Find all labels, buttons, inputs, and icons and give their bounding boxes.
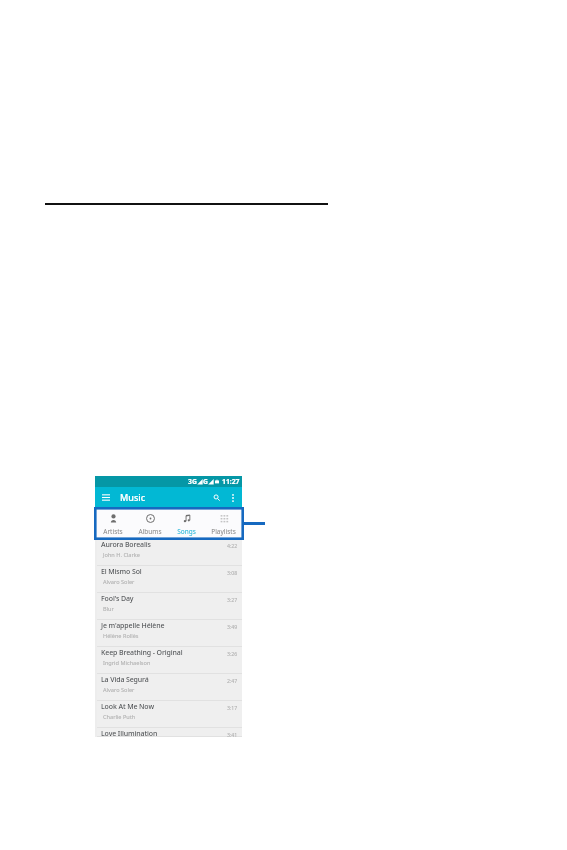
staticText: G [203, 477, 208, 486]
staticText: Songs [177, 527, 196, 536]
staticText: 3G [188, 477, 197, 486]
staticText: 11:27 [222, 477, 240, 486]
staticText: Alvaro Soler [103, 686, 135, 694]
staticText: 3:27 [227, 596, 238, 603]
staticText: Albums [138, 527, 162, 536]
staticText: 3:08 [227, 569, 238, 576]
staticText: 3:41 [227, 731, 238, 737]
staticText: Love Illumination [101, 729, 158, 737]
button[interactable]: Artists [95, 507, 131, 539]
staticText: 2:47 [227, 677, 238, 684]
staticText: 4:22 [227, 542, 238, 549]
button[interactable]: El Mismo Sol [95, 566, 242, 593]
button[interactable]: Keep Breathing - Original [95, 647, 242, 674]
staticText: John H. Clarke [103, 551, 140, 559]
button[interactable]: Aurora Borealis [95, 539, 242, 566]
button[interactable]: More options [226, 491, 239, 504]
staticText: Keep Breathing - Original [101, 648, 183, 658]
staticText: Je m'appelle Hélène [101, 621, 165, 631]
staticText: Ingrid Michaelson [103, 659, 151, 667]
staticText: La Vida Segurá [101, 675, 149, 685]
button[interactable]: La Vida Segurá [95, 674, 242, 701]
staticText: Music [120, 491, 146, 503]
staticText: Look At Me Now [101, 702, 154, 712]
staticText: Charlie Puth [103, 713, 136, 721]
staticText: Artists [103, 527, 123, 536]
staticText: 3:49 [227, 623, 238, 630]
button[interactable]: Je m'appelle Hélène [95, 620, 242, 647]
button[interactable]: Playlists [205, 507, 242, 539]
button[interactable]: Fool's Day [95, 593, 242, 620]
staticText: El Mismo Sol [101, 567, 142, 577]
staticText: Alvaro Soler [103, 578, 135, 586]
staticText: Aurora Borealis [101, 540, 151, 550]
button[interactable]: Search [210, 491, 223, 504]
button[interactable]: Songs [168, 507, 205, 539]
staticText: 3:17 [227, 704, 238, 711]
button[interactable]: Albums [131, 507, 168, 539]
staticText: Playlists [211, 527, 236, 536]
staticText: 3:26 [227, 650, 238, 657]
staticText: Hélène Rollès [103, 632, 139, 640]
staticText: Fool's Day [101, 594, 134, 604]
staticText: Blur [103, 605, 114, 613]
button[interactable]: Open navigation drawer [99, 490, 113, 504]
button[interactable]: Look At Me Now [95, 701, 242, 728]
button[interactable]: Love Illumination [95, 728, 242, 737]
